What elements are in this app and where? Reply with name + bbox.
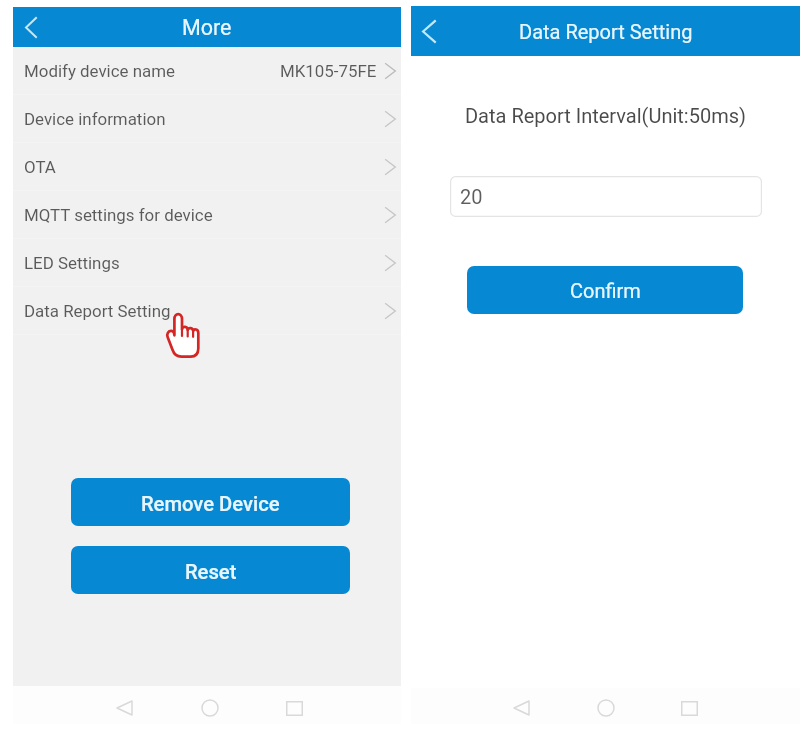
button[interactable]: Confirm <box>467 266 743 314</box>
staticText: Remove Device <box>141 492 280 516</box>
button[interactable]: Back <box>13 7 49 47</box>
staticText: OTA <box>24 157 56 177</box>
button[interactable]: Home <box>592 694 620 722</box>
staticText: 20 <box>460 185 483 208</box>
staticText: MK105-75FE <box>280 61 377 81</box>
button[interactable]: Remove Device <box>71 478 350 526</box>
button[interactable]: Reset <box>71 546 350 594</box>
button[interactable]: Home <box>196 694 224 722</box>
staticText: Device information <box>24 109 166 129</box>
button[interactable]: Recents <box>280 694 308 722</box>
staticText: MQTT settings for device <box>24 205 213 225</box>
button[interactable]: Back <box>507 694 535 722</box>
button[interactable]: Data Report Setting <box>13 287 401 334</box>
button[interactable]: LED Settings <box>13 239 401 286</box>
staticText: LED Settings <box>24 253 120 273</box>
staticText: Confirm <box>570 279 641 302</box>
button[interactable]: Back <box>110 694 138 722</box>
staticText: More <box>182 15 232 40</box>
button[interactable]: OTA <box>13 143 401 190</box>
staticText: Data Report Setting <box>519 20 693 43</box>
staticText: Data Report Interval(Unit:50ms) <box>411 104 800 127</box>
button[interactable]: Device information <box>13 95 401 142</box>
staticText: Modify device name <box>24 61 176 81</box>
button[interactable]: MQTT settings for device <box>13 191 401 238</box>
staticText: Data Report Setting <box>24 301 171 321</box>
button[interactable]: 20 <box>450 176 762 217</box>
staticText: Reset <box>185 560 237 584</box>
button[interactable]: Back <box>411 6 447 56</box>
button[interactable]: Recents <box>675 694 703 722</box>
button[interactable]: Modify device name <box>13 47 401 94</box>
